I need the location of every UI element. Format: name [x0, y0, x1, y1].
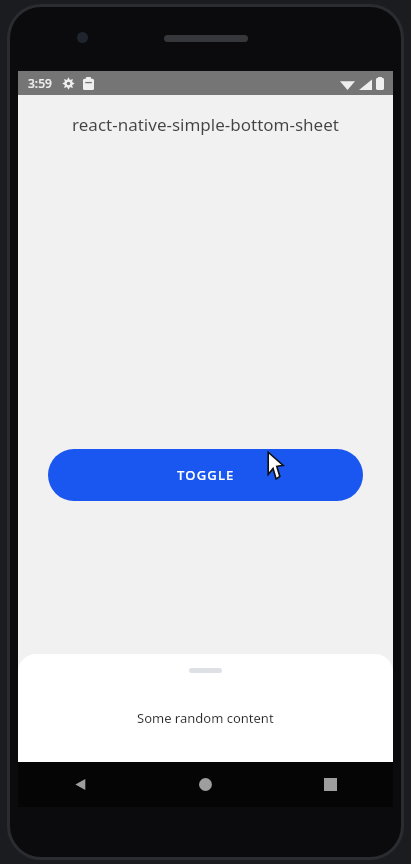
staticText: react-native-simple-bottom-sheet: [72, 113, 339, 136]
staticText: TOGGLE: [177, 466, 235, 484]
button[interactable]: TOGGLE: [48, 449, 363, 501]
button[interactable]: Drag handle: [189, 668, 222, 673]
button[interactable]: Recent apps: [268, 762, 393, 807]
button[interactable]: Home: [143, 762, 268, 807]
button[interactable]: Back: [18, 762, 143, 807]
staticText: 3:59: [28, 75, 52, 91]
staticText: Some random content: [137, 709, 274, 727]
